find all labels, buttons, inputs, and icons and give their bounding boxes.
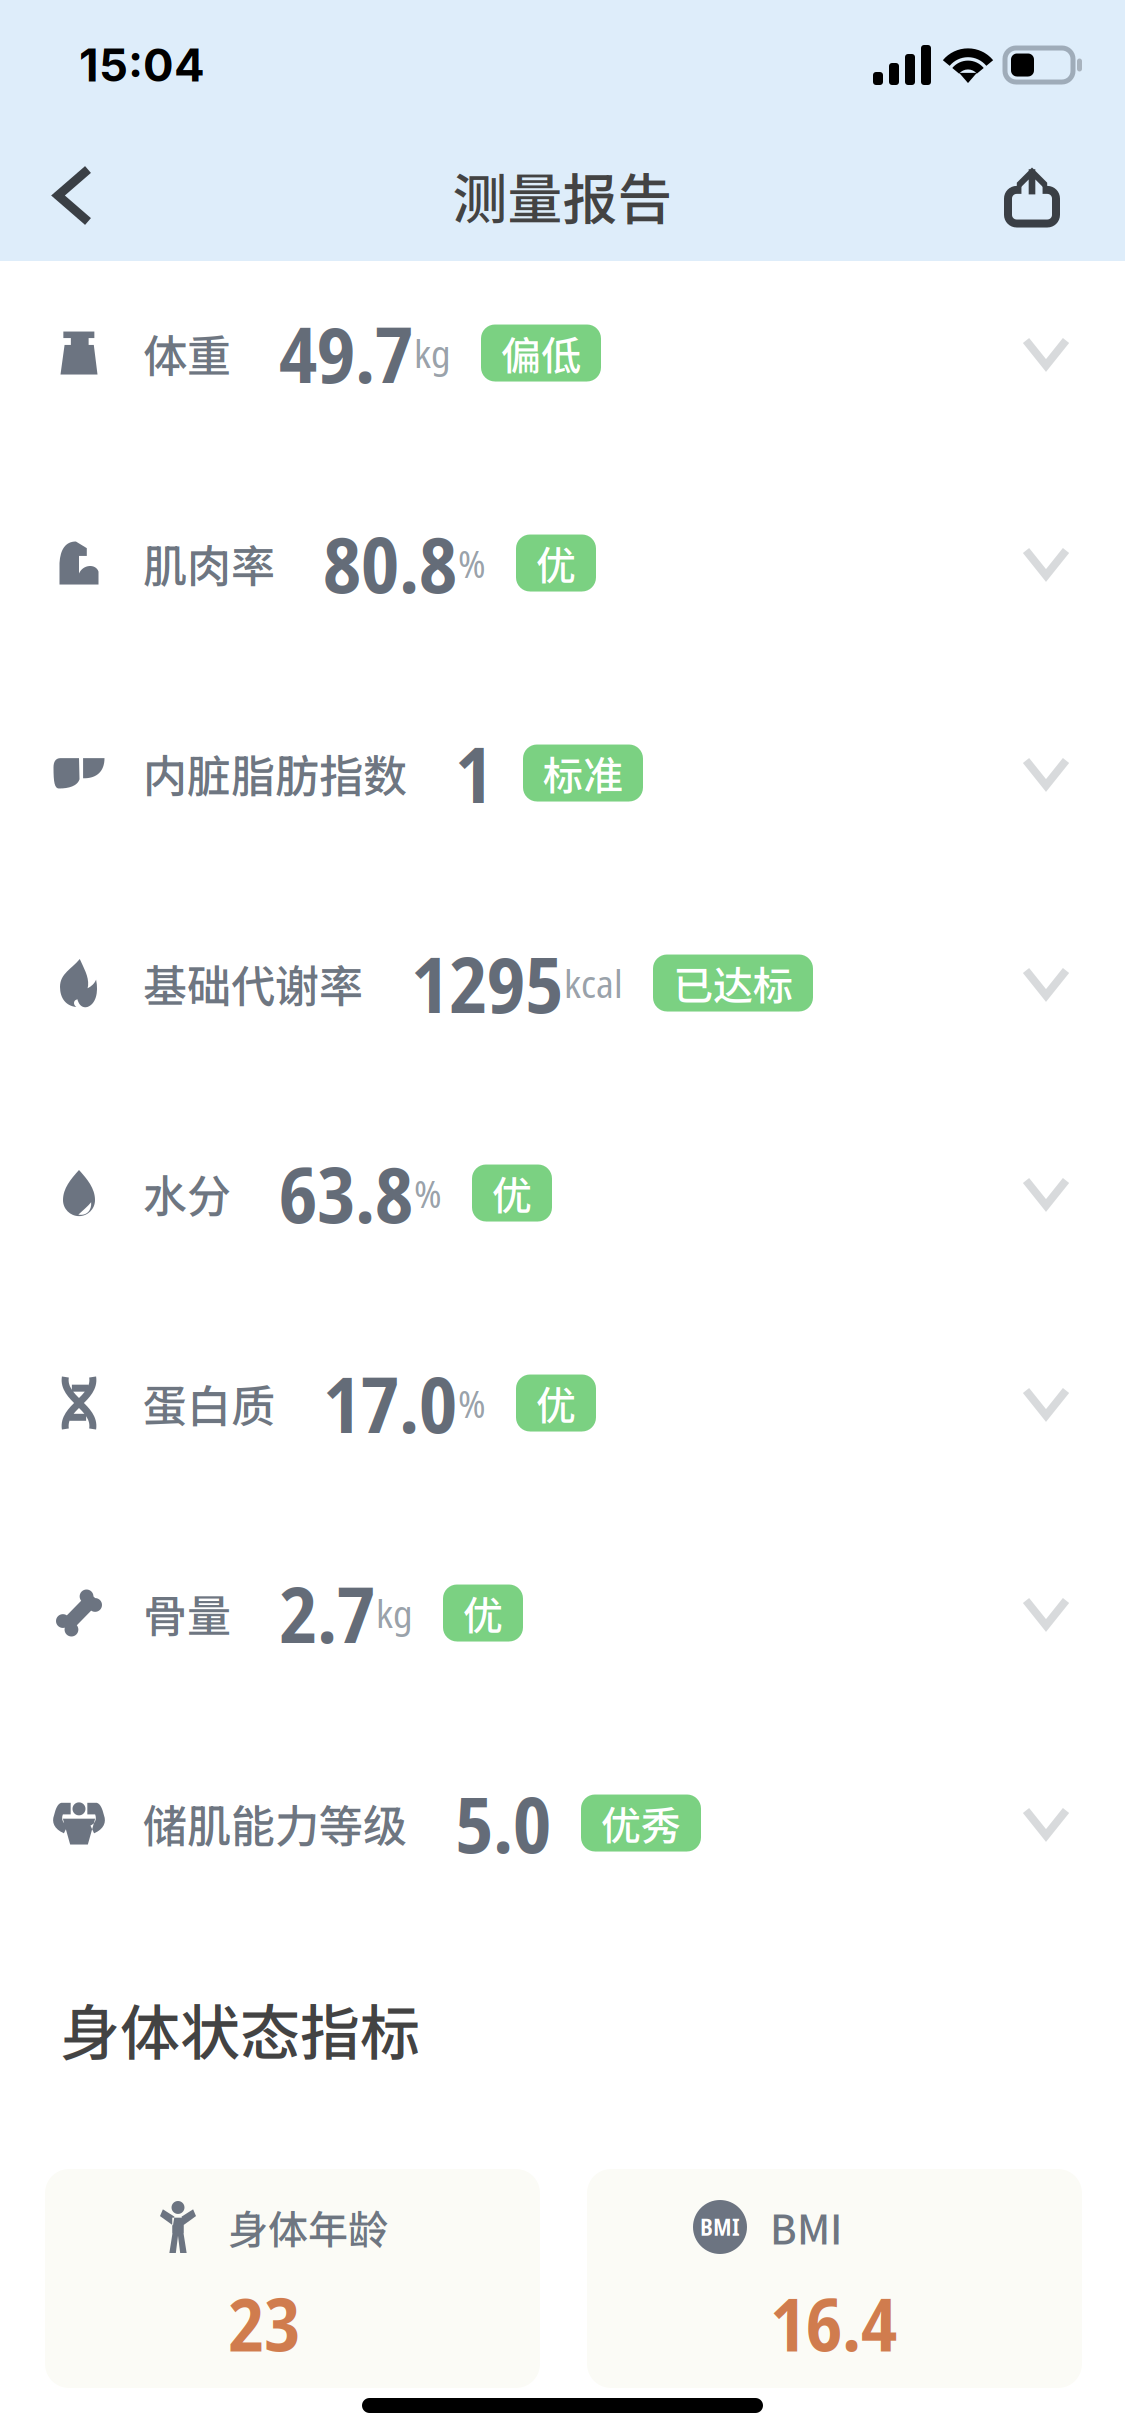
staticText: 标准 xyxy=(543,744,623,802)
staticText: 2.7 xyxy=(279,1560,375,1666)
staticText: 已达标 xyxy=(673,954,793,1012)
button[interactable]: 水分 xyxy=(0,1088,1125,1298)
button[interactable]: 体重 xyxy=(0,261,1125,458)
button[interactable]: BMI xyxy=(587,2169,1082,2388)
staticText: 偏低 xyxy=(501,324,581,382)
staticText: 优秀 xyxy=(601,1794,681,1852)
staticText: 63.8 xyxy=(279,1140,413,1246)
staticText: BMI xyxy=(770,2198,842,2256)
staticText: 优 xyxy=(536,534,576,592)
staticText: 骨量 xyxy=(143,1581,231,1645)
staticText: 储肌能力等级 xyxy=(143,1791,407,1855)
staticText: 49.7 xyxy=(279,300,413,406)
staticText: kcal xyxy=(564,957,623,1009)
staticText: 80.8 xyxy=(323,510,457,616)
staticText: kg xyxy=(414,327,451,379)
staticText: 基础代谢率 xyxy=(143,951,363,1015)
staticText: 身体年龄 xyxy=(228,2198,388,2256)
staticText: 身体状态指标 xyxy=(60,1985,420,2072)
staticText: 肌肉率 xyxy=(143,531,275,595)
button[interactable]: 储肌能力等级 xyxy=(0,1718,1125,1928)
staticText: 测量报告 xyxy=(452,156,672,235)
staticText: 优 xyxy=(463,1584,503,1642)
staticText: % xyxy=(414,1167,442,1219)
button[interactable]: 蛋白质 xyxy=(0,1298,1125,1508)
button[interactable]: 骨量 xyxy=(0,1508,1125,1718)
staticText: 内脏脂肪指数 xyxy=(143,741,407,805)
button[interactable]: 基础代谢率 xyxy=(0,878,1125,1088)
staticText: 1295 xyxy=(411,930,563,1036)
button[interactable]: 肌肉率 xyxy=(0,458,1125,668)
staticText: 23 xyxy=(228,2273,300,2373)
staticText: 1 xyxy=(455,720,493,826)
staticText: 优 xyxy=(492,1164,532,1222)
button[interactable]: Back xyxy=(0,141,132,249)
staticText: kg xyxy=(376,1587,413,1639)
staticText: % xyxy=(458,537,486,589)
staticText: 16.4 xyxy=(770,2273,897,2373)
button[interactable]: 内脏脂肪指数 xyxy=(0,668,1125,878)
staticText: % xyxy=(458,1377,486,1429)
staticText: 水分 xyxy=(143,1161,231,1225)
button[interactable]: Share xyxy=(964,141,1125,249)
staticText: 15:04 xyxy=(79,38,205,92)
staticText: 17.0 xyxy=(323,1350,457,1456)
staticText: 5.0 xyxy=(455,1770,551,1876)
staticText: 体重 xyxy=(143,321,231,385)
staticText: 优 xyxy=(536,1374,576,1432)
button[interactable]: 身体年龄 xyxy=(45,2169,540,2388)
staticText: BMI xyxy=(700,2212,740,2242)
staticText: 蛋白质 xyxy=(143,1371,275,1435)
